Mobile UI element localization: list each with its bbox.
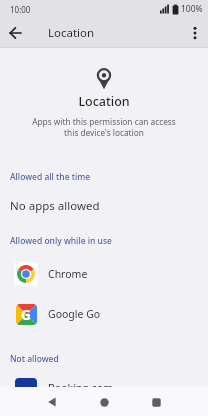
staticText: 100% (181, 3, 203, 15)
button[interactable] (42, 392, 62, 412)
staticText: Allowed only while in use (10, 235, 112, 247)
staticText: Location (0, 93, 208, 110)
button[interactable] (146, 392, 166, 412)
button[interactable] (182, 20, 208, 46)
staticText: 10:00 (10, 4, 31, 15)
staticText: Google Go (48, 307, 101, 321)
staticText: No apps allowed (10, 198, 100, 214)
button[interactable] (0, 18, 30, 47)
staticText: Apps with this permission can access thi… (0, 116, 208, 139)
staticText: Location (48, 25, 95, 41)
button[interactable]: B. (0, 368, 208, 408)
staticText: Not allowed (10, 353, 59, 365)
button[interactable]: Chrome (0, 254, 208, 294)
staticText: G (21, 306, 31, 324)
staticText: Chrome (48, 267, 88, 281)
button[interactable]: G (0, 294, 208, 334)
staticText: Allowed all the time (10, 171, 91, 183)
staticText: Booking.com (48, 381, 113, 395)
button[interactable] (94, 392, 114, 412)
